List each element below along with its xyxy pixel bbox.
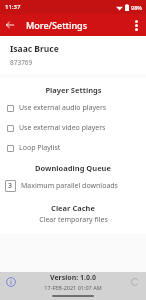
- staticText: Downloading Queue: [35, 163, 111, 173]
- button[interactable]: Use external video players: [0, 121, 146, 135]
- staticText: Clear Cache: [51, 203, 95, 213]
- staticText: Use external audio players: [19, 103, 107, 113]
- button[interactable]: 3: [0, 179, 146, 193]
- staticText: Player Settings: [45, 85, 102, 95]
- button[interactable]: Loop Playlist: [0, 141, 146, 155]
- staticText: Isaac Bruce: [10, 43, 59, 55]
- staticText: 873769: [10, 58, 33, 67]
- staticText: Maximum parallel downloads: [21, 181, 118, 191]
- button[interactable]: Clear Cache: [0, 202, 146, 226]
- staticText: 17-FEB-2021 01:07 AM: [44, 284, 102, 291]
- staticText: Version: 1.0.0: [50, 273, 96, 283]
- button[interactable]: Refresh: [129, 276, 141, 288]
- button[interactable]: More options: [126, 15, 146, 35]
- staticText: 3: [8, 181, 13, 191]
- staticText: Clear temporary files: [39, 215, 108, 225]
- staticText: More/Settings: [26, 19, 88, 31]
- staticText: Loop Playlist: [19, 143, 61, 153]
- button[interactable]: Isaac Bruce: [0, 36, 146, 74]
- staticText: Use external video players: [19, 123, 106, 133]
- button[interactable]: Use external audio players: [0, 101, 146, 115]
- staticText: 11:37: [5, 3, 21, 11]
- button[interactable]: Information: [4, 275, 18, 289]
- button[interactable]: Back: [0, 15, 20, 35]
- staticText: 98%: [131, 4, 142, 11]
